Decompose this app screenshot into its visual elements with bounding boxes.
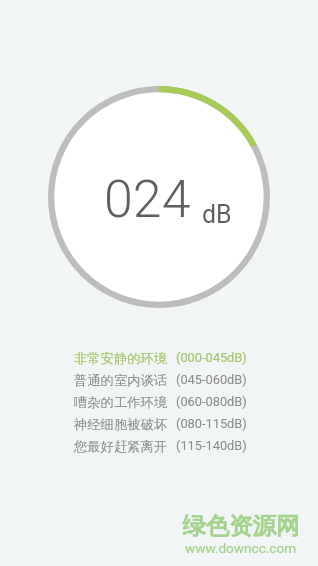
staticText: 非常安静的环境 bbox=[74, 350, 168, 367]
button[interactable]: 神经细胞被破坏 bbox=[74, 416, 247, 438]
staticText: 您最好赶紧离开 bbox=[74, 438, 168, 455]
button[interactable]: 普通的室内谈话 bbox=[74, 372, 247, 394]
staticText: 嘈杂的工作环境 bbox=[74, 394, 168, 411]
staticText: 绿色资源网 bbox=[182, 511, 300, 541]
button[interactable]: 非常安静的环境 bbox=[74, 350, 247, 372]
staticText: (000-045dB) bbox=[176, 350, 247, 365]
button[interactable]: 嘈杂的工作环境 bbox=[74, 394, 247, 416]
staticText: 神经细胞被破坏 bbox=[74, 416, 168, 433]
staticText: (080-115dB) bbox=[176, 416, 247, 431]
staticText: (060-080dB) bbox=[176, 394, 247, 409]
button[interactable]: 您最好赶紧离开 bbox=[74, 438, 247, 460]
staticText: 普通的室内谈话 bbox=[74, 372, 168, 389]
staticText: 024 bbox=[104, 169, 191, 230]
staticText: www.downcc.com bbox=[185, 540, 297, 556]
button[interactable]: Noise level gauge, 24 decibels bbox=[48, 86, 270, 308]
staticText: (045-060dB) bbox=[176, 372, 247, 387]
staticText: (115-140dB) bbox=[176, 438, 247, 453]
staticText: dB bbox=[202, 200, 232, 229]
